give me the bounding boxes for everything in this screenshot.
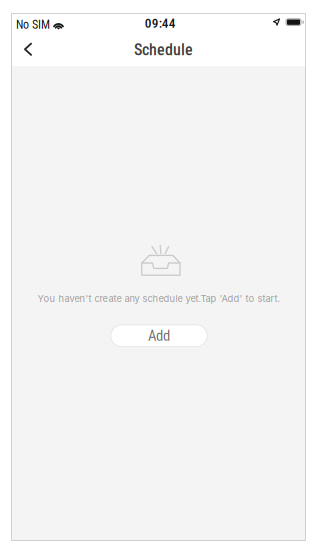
staticText: Schedule [134, 40, 193, 59]
button[interactable]: Back [11, 36, 45, 66]
staticText: Add [148, 327, 170, 344]
staticText: 09:44 [145, 15, 176, 31]
staticText: You haven't create any schedule yet.Tap … [37, 293, 280, 304]
button[interactable]: Add [110, 324, 208, 347]
staticText: No SIM [16, 18, 50, 32]
